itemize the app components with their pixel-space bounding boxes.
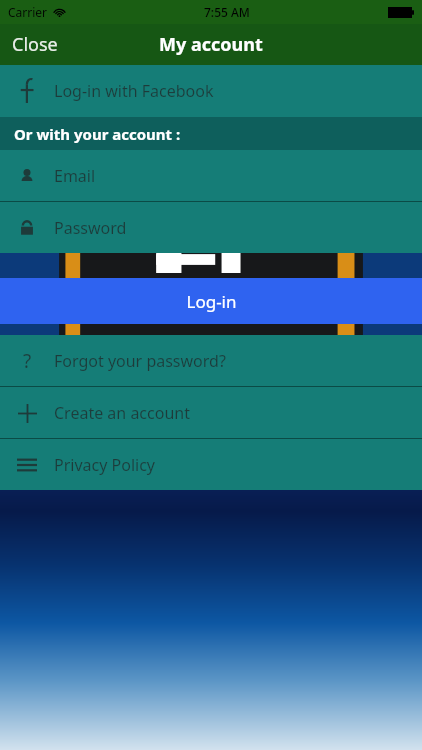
- staticText: ?: [23, 348, 32, 374]
- button[interactable]: Password: [0, 202, 422, 253]
- staticText: Privacy Policy: [54, 454, 155, 476]
- staticText: Or with your account :: [14, 124, 181, 144]
- staticText: Close: [12, 32, 58, 57]
- staticText: Email: [54, 165, 96, 187]
- staticText: 7:55 AM: [204, 4, 250, 20]
- staticText: Carrier: [8, 4, 48, 20]
- staticText: Password: [54, 217, 127, 239]
- button[interactable]: Privacy Policy: [0, 439, 422, 490]
- button[interactable]: Log-in: [0, 278, 422, 324]
- button[interactable]: Create an account: [0, 387, 422, 438]
- button[interactable]: Log-in with Facebook: [0, 65, 422, 117]
- button[interactable]: Email: [0, 150, 422, 201]
- button[interactable]: ?: [0, 335, 422, 386]
- staticText: My account: [159, 32, 263, 57]
- staticText: Create an account: [54, 402, 190, 424]
- button[interactable]: Close: [0, 24, 70, 65]
- staticText: Log-in with Facebook: [54, 80, 214, 102]
- staticText: Log-in: [186, 290, 237, 313]
- staticText: Forgot your password?: [54, 350, 226, 372]
